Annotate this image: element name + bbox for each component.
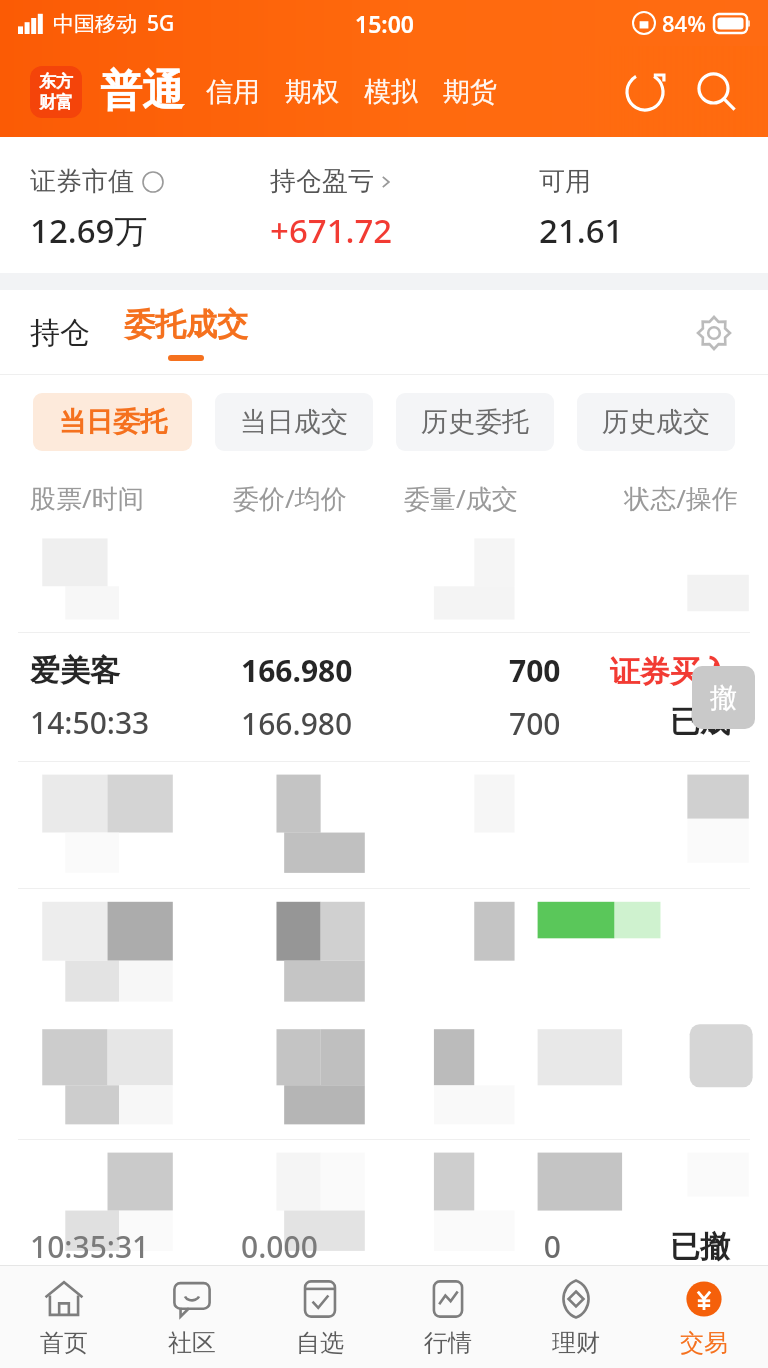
staticText: 当日成交	[240, 405, 348, 439]
staticText: 模拟	[364, 75, 418, 109]
button[interactable]: 当日委托	[33, 393, 192, 451]
staticText: 首页	[40, 1328, 88, 1358]
staticText: 当日委托	[59, 405, 167, 439]
staticText: 可用	[539, 165, 591, 198]
staticText: 证券买入	[610, 653, 730, 691]
button[interactable]: 持仓	[30, 314, 90, 352]
button[interactable]: 搜索	[690, 65, 744, 119]
staticText: 爱美客	[30, 652, 120, 690]
staticText: +671.72	[270, 208, 393, 253]
staticText: 期权	[285, 75, 339, 109]
button[interactable]: 历史委托	[396, 393, 554, 451]
button[interactable]: 社区	[128, 1266, 256, 1368]
button[interactable]: 首页	[0, 1266, 128, 1368]
button[interactable]: 普通	[100, 65, 184, 118]
staticText: 166.980	[241, 703, 353, 744]
button[interactable]: 刷新	[618, 65, 672, 119]
staticText: 166.980	[241, 650, 353, 691]
staticText: 交易	[680, 1328, 728, 1358]
button[interactable]: 期货	[443, 75, 497, 109]
button[interactable]: 自选	[256, 1266, 384, 1368]
button[interactable]: 撤	[692, 666, 755, 729]
staticText: 状态/操作	[567, 480, 738, 516]
staticText: 700	[509, 650, 561, 691]
staticText: 持仓	[30, 314, 90, 352]
staticText: 信用	[206, 75, 260, 109]
staticText: 84%	[662, 8, 706, 38]
button[interactable]: 行情	[384, 1266, 512, 1368]
staticText: 委托成交	[124, 305, 248, 344]
staticText: 财富	[39, 92, 73, 113]
staticText: 撤	[710, 681, 737, 715]
staticText: 股票/时间	[30, 480, 233, 516]
button[interactable]: 理财	[512, 1266, 640, 1368]
button[interactable]: 设置	[686, 305, 742, 361]
button[interactable]: 当日成交	[215, 393, 373, 451]
staticText: 5G	[147, 9, 175, 38]
staticText: 自选	[296, 1328, 344, 1358]
staticText: 0	[418, 1226, 561, 1267]
button[interactable]: 委托成交	[124, 305, 248, 361]
staticText: 行情	[424, 1328, 472, 1358]
staticText: 0.000	[241, 1226, 418, 1267]
staticText: 历史成交	[602, 405, 710, 439]
staticText: 14:50:33	[30, 702, 150, 743]
button[interactable]: 爱美客	[0, 633, 768, 761]
staticText: 理财	[552, 1328, 600, 1358]
button[interactable]: 持仓盈亏	[270, 165, 394, 198]
staticText: 12.69万	[30, 208, 148, 253]
staticText: 委量/成交	[404, 480, 567, 516]
staticText: 东方	[39, 71, 73, 92]
staticText: 普通	[100, 65, 184, 118]
button[interactable]: 东方财富	[30, 66, 82, 118]
staticText: 已成	[670, 703, 730, 741]
button[interactable]: 模拟	[364, 75, 418, 109]
staticText: 21.61	[539, 208, 624, 253]
staticText: 10:35:31	[30, 1226, 241, 1267]
button[interactable]: 期权	[285, 75, 339, 109]
button[interactable]: 历史成交	[577, 393, 735, 451]
staticText: 历史委托	[421, 405, 529, 439]
staticText: 中国移动	[53, 11, 137, 37]
staticText: 社区	[168, 1328, 216, 1358]
staticText: 持仓盈亏	[270, 165, 374, 198]
staticText: 委价/均价	[233, 480, 404, 516]
staticText: 已撤	[561, 1228, 730, 1266]
button[interactable]: 信用	[206, 75, 260, 109]
staticText: 700	[509, 703, 561, 744]
staticText: 证券市值	[30, 165, 134, 198]
button[interactable]: 交易	[640, 1266, 768, 1368]
staticText: 15:00	[355, 8, 414, 39]
staticText: 期货	[443, 75, 497, 109]
